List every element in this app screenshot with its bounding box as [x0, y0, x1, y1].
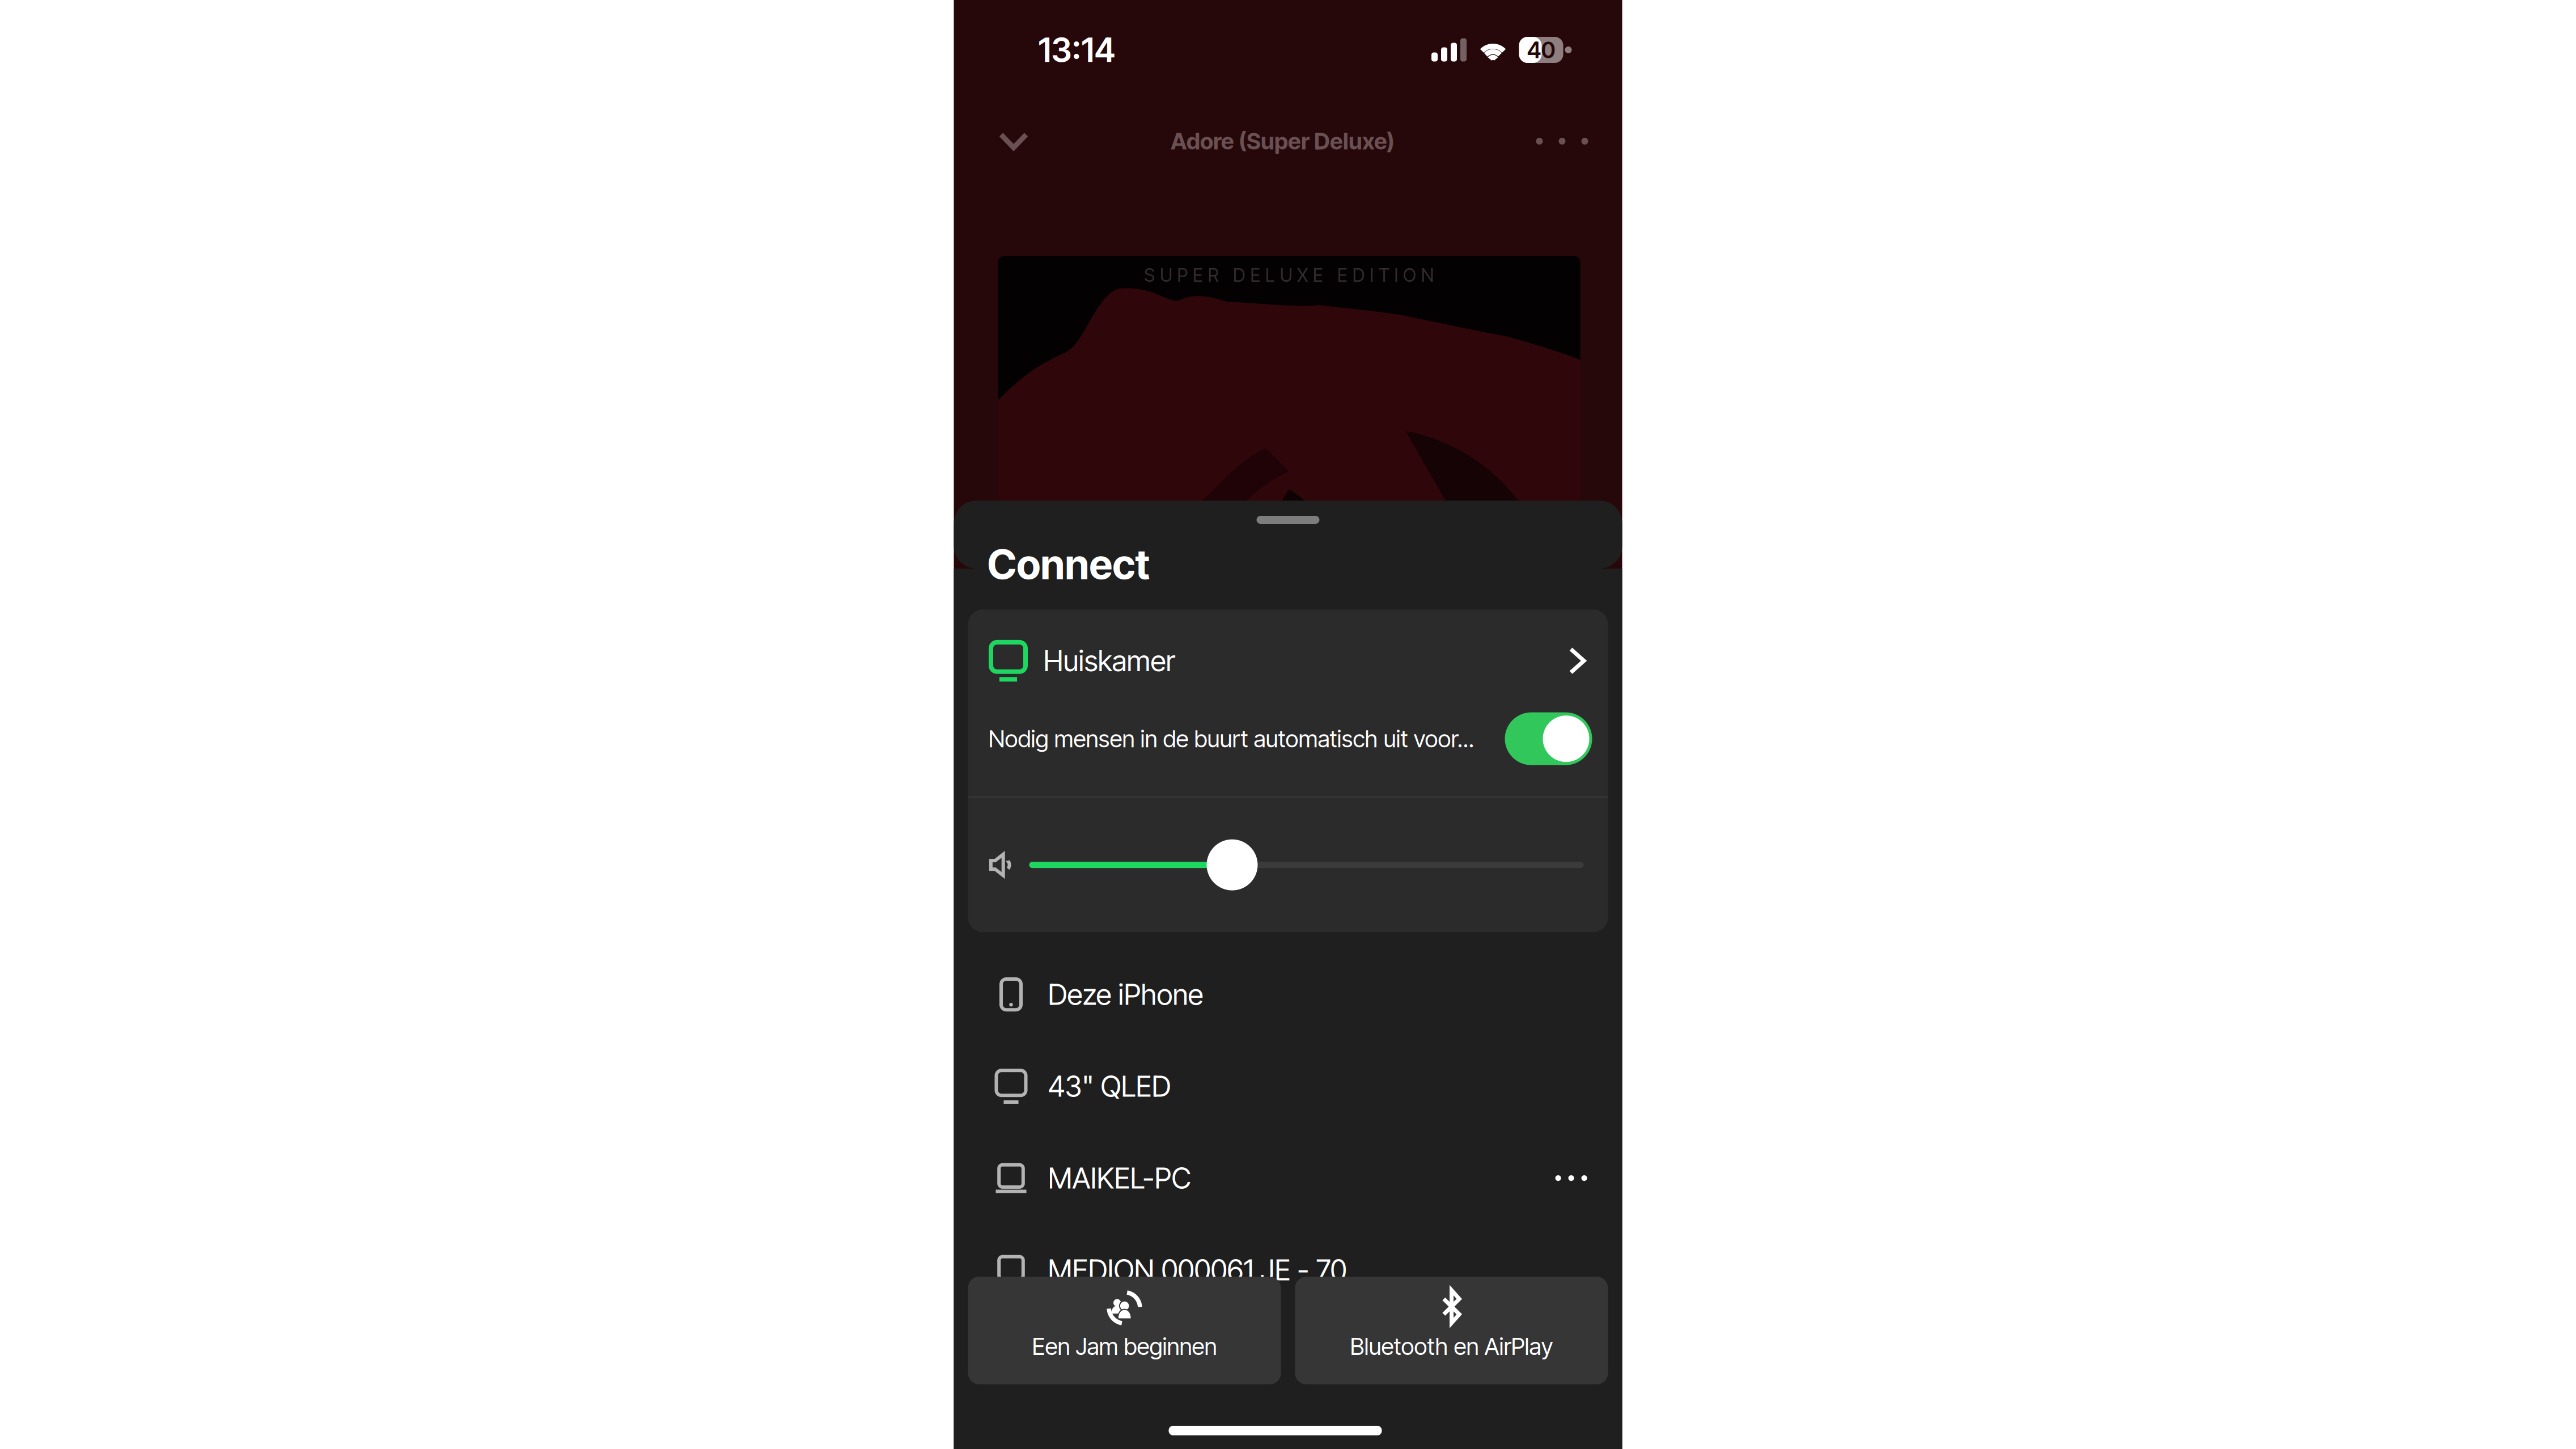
- staticText: Huiskamer: [1043, 643, 1175, 678]
- staticText: Bluetooth en AirPlay: [1350, 1332, 1553, 1361]
- staticText: 13:14: [1038, 30, 1115, 70]
- staticText: Een Jam beginnen: [1032, 1332, 1217, 1361]
- button[interactable]: MEDION 000061 JE - 70: [954, 1224, 1622, 1316]
- button[interactable]: Deze iPhone: [954, 948, 1622, 1040]
- button[interactable]: More options: [1521, 110, 1603, 172]
- button[interactable]: Een Jam beginnen: [968, 1277, 1281, 1384]
- staticText: 43" QLED: [1048, 1069, 1171, 1104]
- button[interactable]: Automatically invite nearby people: [1505, 712, 1592, 765]
- staticText: 40: [1527, 36, 1555, 64]
- button[interactable]: 43" QLED: [954, 1040, 1622, 1132]
- staticText: Adore (Super Deluxe): [1171, 127, 1395, 155]
- staticText: MEDION 000061 JE - 70: [1048, 1253, 1347, 1287]
- staticText: Deze iPhone: [1048, 977, 1203, 1012]
- staticText: Nodig mensen in de buurt automatisch uit…: [988, 725, 1474, 753]
- button[interactable]: Huiskamer: [968, 609, 1608, 712]
- staticText: Connect: [987, 540, 1150, 589]
- button[interactable]: Collapse now playing: [983, 110, 1044, 172]
- staticText: SUPER DELUXE EDITION: [1144, 264, 1434, 286]
- button[interactable]: Bluetooth en AirPlay: [1295, 1277, 1608, 1384]
- button[interactable]: MAIKEL-PC: [954, 1132, 1622, 1224]
- staticText: MAIKEL-PC: [1048, 1161, 1191, 1195]
